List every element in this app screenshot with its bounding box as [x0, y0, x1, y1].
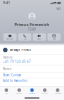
staticText: +41 79 123 45 67 — [3, 60, 31, 63]
staticText: Message Primus — [10, 48, 31, 52]
staticText: Edit — [56, 7, 61, 10]
staticText: call — [24, 38, 26, 40]
staticText: Notes — [3, 67, 11, 71]
staticText: 9:41 — [3, 1, 10, 5]
staticText: Primus Firmenich — [14, 22, 49, 27]
staticText: mobile — [3, 56, 13, 59]
staticText: 7240 — [28, 28, 36, 31]
button[interactable]: call — [18, 33, 31, 41]
button[interactable]: Message Primus — [0, 46, 64, 54]
staticText: Add to Favourites — [3, 79, 27, 82]
staticText: Voicemail — [55, 92, 61, 94]
button[interactable]: Voicemail — [51, 88, 64, 94]
staticText: Share Contact — [3, 74, 21, 77]
staticText: message — [6, 38, 13, 40]
button[interactable]: Keypad — [38, 88, 51, 94]
staticText: Contacts — [29, 92, 35, 94]
button[interactable]: Recents — [13, 88, 26, 94]
staticText: mail — [53, 38, 55, 40]
button[interactable]: Edit — [54, 6, 64, 11]
button[interactable]: video — [33, 33, 46, 41]
button[interactable]: Lists — [0, 88, 13, 94]
staticText: Recents — [16, 92, 22, 94]
button[interactable]: message — [3, 33, 16, 41]
button[interactable]: Contacts — [26, 88, 38, 94]
staticText: Lists — [5, 92, 8, 94]
staticText: video — [37, 38, 41, 40]
button[interactable]: mail — [47, 33, 61, 41]
button[interactable]: Share Contact — [0, 73, 64, 78]
staticText: Keypad — [42, 92, 48, 94]
button[interactable]: Add to Favourites — [0, 78, 64, 83]
